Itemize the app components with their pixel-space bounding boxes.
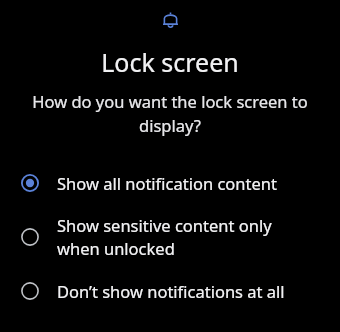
button[interactable]: Don’t show notifications at all [0, 270, 340, 312]
staticText: Show all notification content [57, 172, 277, 194]
staticText: Lock screen [101, 45, 239, 79]
staticText: How do you want the lock screen to displ… [22, 90, 318, 137]
button[interactable]: Show all notification content [0, 162, 340, 204]
button[interactable]: Notifications [160, 9, 181, 32]
staticText: Don’t show notifications at all [57, 280, 285, 302]
staticText: Show sensitive content only when unlocke… [57, 214, 272, 260]
button[interactable]: Show sensitive content only when unlocke… [0, 204, 340, 270]
